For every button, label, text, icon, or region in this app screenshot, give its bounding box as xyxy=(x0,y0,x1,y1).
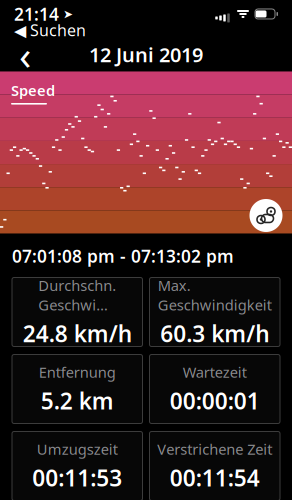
button[interactable]: Wartezeit xyxy=(149,354,280,423)
staticText xyxy=(249,0,255,29)
button[interactable]: Durchschn. Geschwi… xyxy=(12,277,142,346)
staticText: 07:01:08 pm - 07:13:02 pm xyxy=(12,244,234,267)
staticText: 5.2 km xyxy=(41,386,114,416)
staticText: 00:11:54 xyxy=(170,463,260,493)
staticText: Entfernung xyxy=(39,362,116,382)
button[interactable]: Entfernung xyxy=(12,354,142,423)
button[interactable]: Back xyxy=(3,37,47,71)
staticText: 21:14 xyxy=(14,2,59,25)
staticText: 12 Juni 2019 xyxy=(89,41,203,68)
button[interactable]: Show route on map xyxy=(246,195,286,235)
button[interactable]: Verstrichene Zeit xyxy=(149,431,280,500)
staticText: Wartezeit xyxy=(183,362,247,382)
staticText: 00:00:01 xyxy=(170,386,260,416)
staticText: Speed xyxy=(11,80,55,100)
staticText: 60.3 km/h xyxy=(160,318,269,348)
staticText: ‹ xyxy=(19,28,31,81)
staticText: Max. Geschwindigkeit xyxy=(158,275,272,314)
staticText: 00:11:53 xyxy=(32,463,122,493)
button[interactable]: Max. Geschwindigkeit xyxy=(149,277,280,346)
button[interactable]: ◀ Suchen xyxy=(14,22,278,37)
staticText: Verstrichene Zeit xyxy=(157,439,272,459)
staticText: ➤ xyxy=(59,7,73,21)
staticText: ◀ Suchen xyxy=(14,19,86,41)
staticText: Umzugszeit xyxy=(37,439,118,459)
staticText: 24.8 km/h xyxy=(23,318,132,348)
button[interactable]: Umzugszeit xyxy=(12,431,142,500)
staticText: Durchschn. Geschwi… xyxy=(38,275,116,314)
